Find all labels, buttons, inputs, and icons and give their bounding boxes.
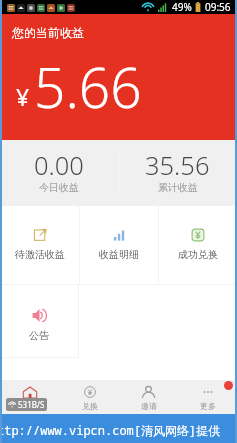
button[interactable]: 公告 — [0, 285, 78, 358]
staticText: 0.00 — [34, 148, 84, 183]
staticText: 531B/S — [18, 399, 45, 410]
staticText: 累计收益 — [158, 181, 198, 194]
button[interactable]: 更多 — [178, 380, 237, 414]
button[interactable]: 35.56 — [118, 140, 237, 206]
button[interactable]: 待激活收益 — [0, 206, 79, 284]
staticText: 更多 — [200, 401, 216, 411]
staticText: ¥ — [16, 81, 30, 112]
staticText: 49% — [172, 0, 192, 14]
staticText: 邀请 — [141, 401, 157, 411]
button[interactable]: 收益明细 — [80, 206, 158, 284]
staticText: 09:56 — [205, 0, 231, 14]
button[interactable]: 0.00 — [0, 140, 118, 206]
staticText: 35.56 — [145, 148, 210, 183]
staticText: ttp://www.vipcn.com[清风网络]提供 — [0, 422, 221, 438]
staticText: 待激活收益 — [15, 248, 65, 261]
staticText: 收益明细 — [99, 248, 139, 261]
staticText: 5.66 — [34, 49, 142, 124]
staticText: 今日收益 — [39, 181, 79, 194]
staticText: 公告 — [29, 329, 49, 342]
staticText: 成功兑换 — [178, 248, 218, 261]
staticText: 首页 — [22, 401, 38, 411]
button[interactable]: 首页 — [0, 380, 60, 414]
button[interactable]: 兑换 — [60, 380, 119, 414]
button[interactable]: 成功兑换 — [159, 206, 237, 284]
staticText: 您的当前收益 — [12, 25, 84, 40]
button[interactable]: 邀请 — [119, 380, 178, 414]
staticText: 兑换 — [82, 401, 98, 411]
